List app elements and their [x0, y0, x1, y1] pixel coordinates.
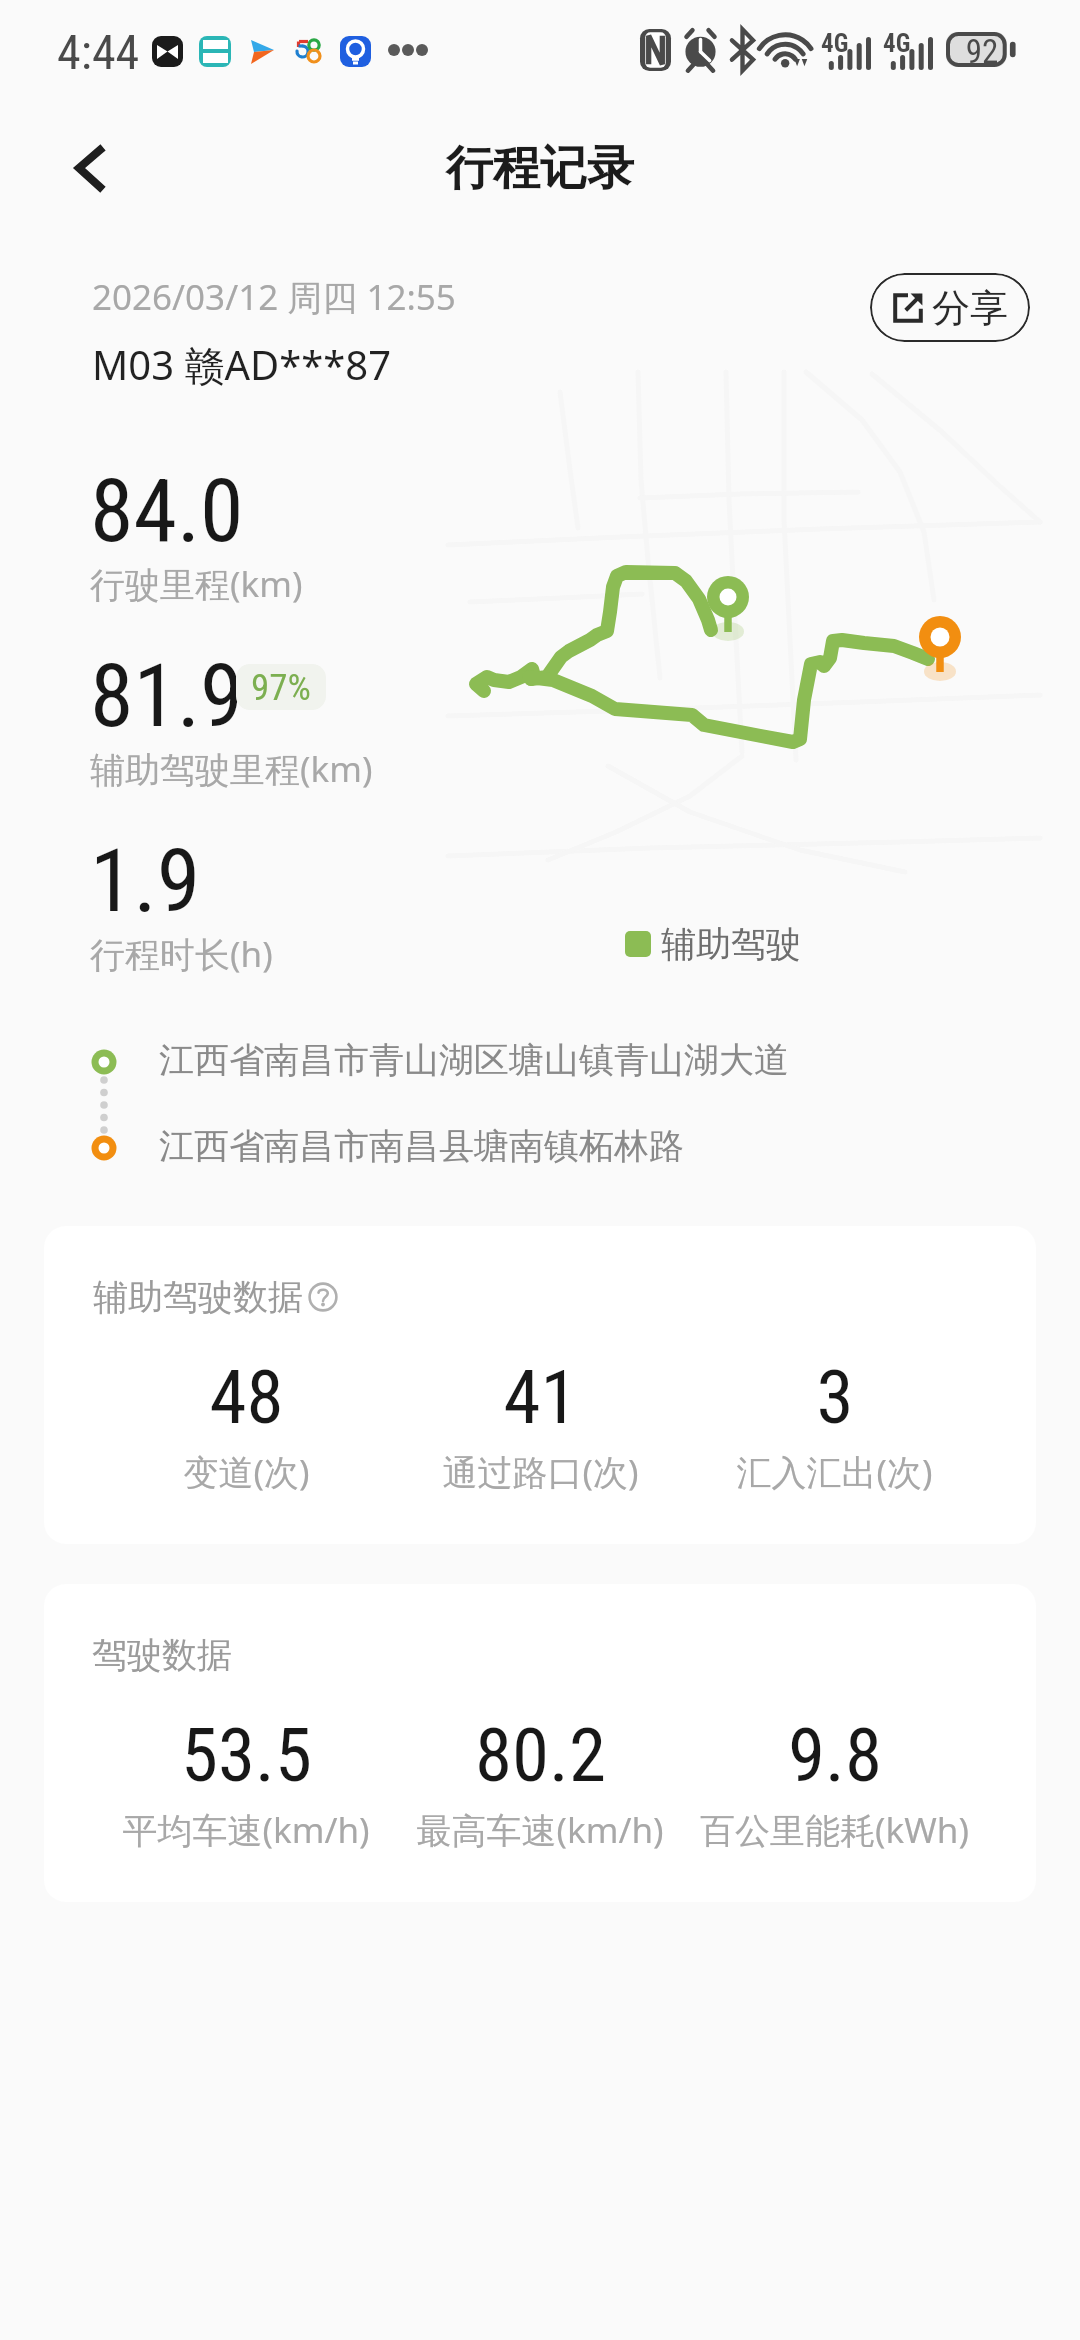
staticText: 3 — [816, 1353, 854, 1441]
staticText: 80.2 — [475, 1711, 606, 1799]
staticText: 92 — [958, 32, 1006, 71]
staticText: 江西省南昌市南昌县塘南镇柘林路 — [159, 1124, 684, 1168]
staticText: 行程记录 — [446, 139, 634, 198]
button[interactable]: 分享 — [870, 273, 1030, 342]
staticText: 9.8 — [788, 1711, 882, 1799]
staticText: 48 — [209, 1353, 284, 1441]
button[interactable]: 驾驶数据 — [44, 1584, 1036, 1902]
staticText: 平均车速(km/h) — [122, 1806, 370, 1854]
staticText: 41 — [503, 1353, 578, 1441]
staticText: 84.0 — [90, 459, 244, 551]
staticText: 辅助驾驶 — [661, 922, 801, 966]
staticText: 最高车速(km/h) — [416, 1806, 664, 1854]
staticText: 行程时长(h) — [90, 930, 273, 978]
staticText: 变道(次) — [183, 1448, 310, 1496]
staticText: 81.9 — [90, 644, 244, 736]
staticText: 辅助驾驶里程(km) — [90, 745, 373, 793]
button[interactable]: 辅助驾驶数据 — [44, 1226, 1036, 1544]
staticText: 53.5 — [181, 1711, 312, 1799]
staticText: 汇入汇出(次) — [736, 1448, 933, 1496]
staticText: 行驶里程(km) — [90, 560, 303, 608]
staticText: 江西省南昌市青山湖区塘山镇青山湖大道 — [159, 1038, 789, 1082]
staticText: 百公里能耗(kWh) — [700, 1806, 969, 1854]
staticText: 辅助驾驶数据 — [93, 1275, 303, 1319]
staticText: 4G — [883, 29, 911, 58]
staticText: 驾驶数据 — [92, 1633, 232, 1677]
staticText: 97% — [251, 666, 311, 709]
staticText: 分享 — [932, 284, 1008, 332]
staticText: 1.9 — [90, 829, 201, 921]
staticText: 4G — [821, 29, 849, 58]
staticText: 2026/03/12 周四 12:55 — [92, 273, 456, 321]
staticText: M03 赣AD***87 — [92, 337, 392, 392]
staticText: 通过路口(次) — [442, 1448, 639, 1496]
staticText: 4:44 — [57, 24, 140, 80]
button[interactable]: Back — [48, 125, 132, 211]
